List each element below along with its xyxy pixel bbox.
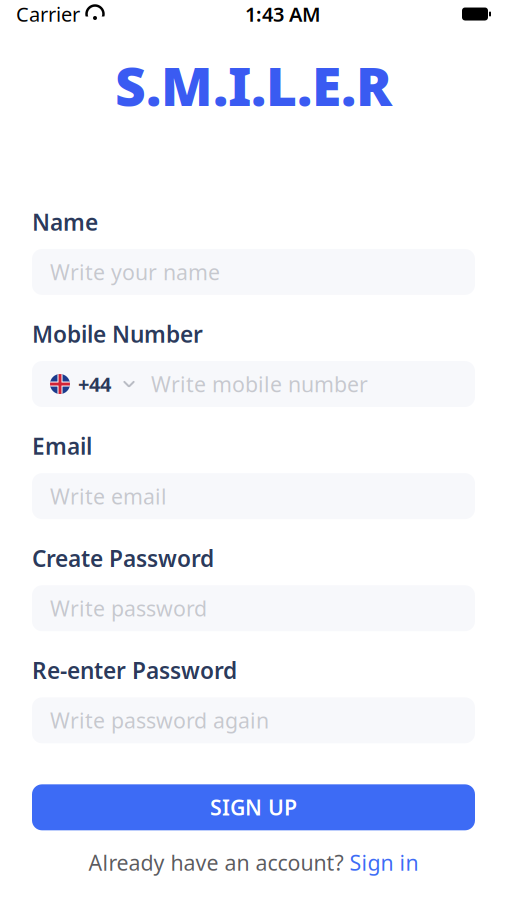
staticText: Write password (50, 594, 207, 622)
button[interactable]: Write your name (32, 249, 475, 295)
staticText: 1:43 AM (245, 1, 321, 27)
staticText: Email (32, 431, 92, 461)
staticText: SIGN UP (210, 793, 297, 821)
button[interactable]: +44 (32, 361, 475, 407)
staticText: Write password again (50, 706, 269, 734)
button[interactable]: Write email (32, 473, 475, 519)
staticText: Carrier (16, 1, 80, 27)
staticText: Already have an account? (88, 848, 343, 877)
button[interactable]: Write password (32, 585, 475, 631)
staticText: Name (32, 207, 98, 237)
button[interactable]: Already have an account? (88, 848, 418, 877)
staticText: Write mobile number (151, 370, 368, 398)
staticText: +44 (78, 371, 111, 397)
staticText: Write your name (50, 258, 220, 286)
staticText: Sign in (349, 848, 418, 877)
staticText: Create Password (32, 543, 214, 573)
staticText: Write email (50, 482, 167, 510)
staticText: Mobile Number (32, 319, 203, 349)
button[interactable]: SIGN UP (32, 784, 475, 830)
button[interactable]: Write password again (32, 697, 475, 743)
staticText: S.M.I.L.E.R (115, 50, 392, 121)
staticText: Re-enter Password (32, 655, 237, 685)
